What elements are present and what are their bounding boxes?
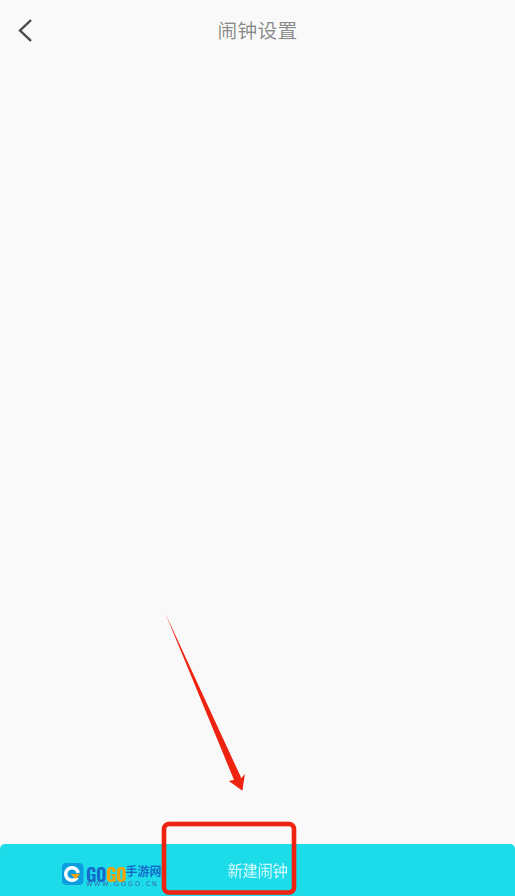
button[interactable]: GO bbox=[0, 844, 515, 896]
staticText: 手游网 bbox=[125, 862, 161, 879]
staticText: W W W . G O G O . C N bbox=[86, 880, 157, 887]
staticText: 新建闹钟 bbox=[227, 859, 287, 881]
button[interactable]: Back bbox=[0, 5, 55, 56]
staticText: GO bbox=[106, 860, 127, 887]
staticText: 闹钟设置 bbox=[217, 15, 297, 44]
staticText: GO bbox=[86, 860, 107, 887]
